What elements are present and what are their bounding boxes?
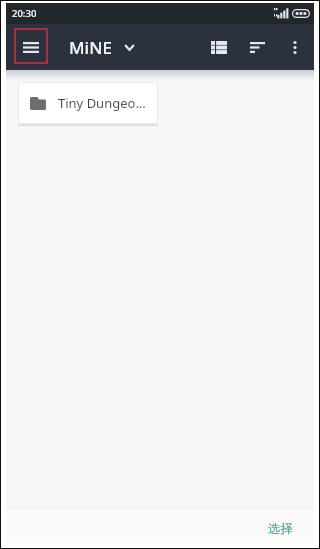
button[interactable]: MiNE	[69, 32, 135, 63]
button[interactable]: 选择	[260, 515, 301, 543]
staticText: 选择	[268, 521, 293, 537]
staticText: MiNE	[69, 36, 112, 59]
staticText: 20:30	[12, 7, 37, 20]
button[interactable]: More options	[276, 28, 314, 66]
button[interactable]: Tiny Dungeo...	[18, 82, 158, 124]
button[interactable]: Menu	[14, 28, 48, 64]
button[interactable]: View mode	[200, 28, 238, 66]
button[interactable]: Sort	[238, 28, 276, 66]
staticText: Tiny Dungeo...	[58, 94, 146, 112]
